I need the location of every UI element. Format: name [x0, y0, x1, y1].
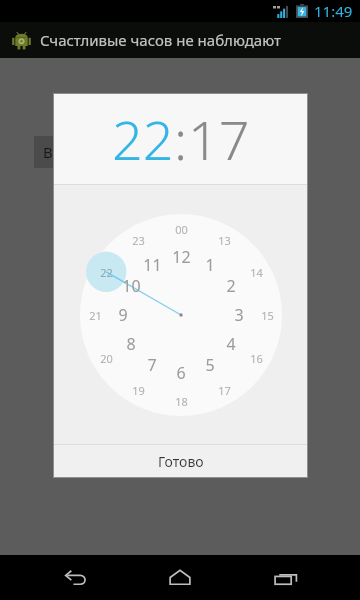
staticText: 13 [218, 233, 231, 248]
button[interactable]: 17 [209, 379, 239, 401]
staticText: 21 [89, 308, 102, 323]
button[interactable]: Home [149, 555, 211, 600]
button[interactable]: 22 [112, 102, 174, 176]
staticText: 11:49 [314, 1, 353, 21]
button[interactable]: 7 [137, 354, 167, 376]
staticText: 14 [250, 265, 263, 280]
button[interactable]: 00 [166, 218, 196, 240]
staticText: Готово [158, 452, 204, 471]
button[interactable]: 13 [209, 229, 239, 251]
staticText: B [43, 142, 53, 162]
staticText: 20 [100, 351, 113, 366]
button[interactable]: 23 [123, 229, 153, 251]
button[interactable]: 11 [137, 254, 167, 276]
button[interactable]: 1 [195, 254, 225, 276]
button[interactable]: 9 [108, 304, 138, 326]
button[interactable]: Back [44, 555, 106, 600]
button[interactable]: 14 [241, 261, 271, 283]
button[interactable]: 17 [188, 102, 250, 176]
staticText: 10 [122, 275, 141, 297]
button[interactable]: 6 [166, 362, 196, 384]
staticText: 6 [176, 362, 186, 384]
button[interactable]: 5 [195, 354, 225, 376]
button[interactable]: B [34, 136, 88, 168]
button[interactable]: 16 [241, 347, 271, 369]
staticText: Счастливые часов не наблюдают [40, 30, 281, 50]
staticText: 15 [261, 308, 274, 323]
button[interactable]: 15 [252, 304, 282, 326]
staticText: 7 [147, 354, 157, 376]
staticText: 23 [132, 233, 145, 248]
staticText: 5 [205, 354, 215, 376]
button[interactable]: 4 [216, 333, 246, 355]
button[interactable]: 2 [216, 275, 246, 297]
staticText: : [174, 102, 188, 176]
staticText: 8 [126, 333, 136, 355]
button[interactable]: 19 [123, 379, 153, 401]
staticText: 12 [172, 246, 191, 268]
button[interactable]: 10 [116, 275, 146, 297]
button[interactable]: 22 [91, 261, 121, 283]
button[interactable]: 20 [91, 347, 121, 369]
staticText: 19 [132, 383, 145, 398]
staticText: 16 [250, 351, 263, 366]
staticText: 2 [226, 275, 236, 297]
staticText: 18 [175, 394, 188, 409]
staticText: 11 [143, 254, 162, 276]
staticText: 9 [118, 304, 128, 326]
button[interactable]: 21 [80, 304, 110, 326]
staticText: 3 [234, 304, 244, 326]
staticText: 4 [226, 333, 236, 355]
staticText: 00 [175, 222, 188, 237]
button[interactable]: Recent apps [255, 555, 317, 600]
button[interactable]: Готово [54, 445, 307, 477]
button[interactable]: 8 [116, 333, 146, 355]
staticText: 22 [100, 265, 113, 280]
button[interactable]: 12 [166, 246, 196, 268]
staticText: 1 [205, 254, 215, 276]
button[interactable]: 18 [166, 390, 196, 412]
button[interactable]: 3 [224, 304, 254, 326]
staticText: 17 [218, 383, 231, 398]
